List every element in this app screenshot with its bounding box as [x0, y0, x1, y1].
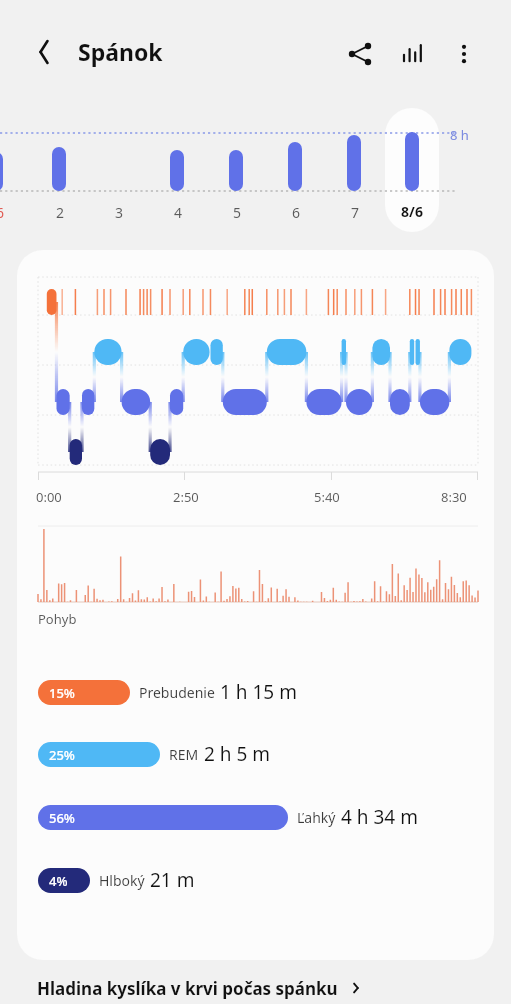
button[interactable]: Statistics [392, 34, 432, 74]
staticText: 56% [49, 809, 75, 827]
button[interactable]: Hladina kyslíka v krvi počas spánku [17, 972, 494, 1004]
button[interactable]: Share [340, 34, 380, 74]
staticText: Ľahký [297, 808, 336, 827]
staticText: 5:40 [314, 488, 340, 506]
staticText: 25% [49, 746, 75, 764]
staticText: 21 m [150, 867, 195, 893]
staticText: 8/6 [394, 202, 430, 221]
staticText: REM [169, 745, 199, 764]
staticText: Pohyb [38, 610, 77, 628]
staticText: 5 [229, 203, 245, 222]
staticText: 15% [49, 684, 75, 702]
staticText: 2:50 [173, 488, 199, 506]
staticText: 6 [0, 203, 8, 222]
staticText: 4 [170, 203, 186, 222]
staticText: Hladina kyslíka v krvi počas spánku [37, 977, 338, 1000]
staticText: 0:00 [36, 488, 62, 506]
staticText: 3 [111, 203, 127, 222]
button[interactable]: 25% [38, 737, 271, 771]
button[interactable]: 15% [38, 675, 297, 709]
staticText: Spánok [78, 36, 163, 67]
button[interactable] [385, 108, 439, 232]
staticText: 8 h [450, 126, 469, 144]
staticText: Prebudenie [139, 683, 215, 702]
staticText: 4% [49, 872, 68, 890]
button[interactable]: Back [26, 34, 62, 70]
staticText: 2 h 5 m [204, 741, 271, 767]
staticText: 6 [288, 203, 304, 222]
staticText: 2 [52, 203, 68, 222]
staticText: 1 h 15 m [220, 679, 297, 705]
staticText: 7 [347, 203, 363, 222]
staticText: 8:30 [441, 488, 467, 506]
staticText: Hlboký [99, 871, 145, 890]
button[interactable]: More options [444, 34, 484, 74]
staticText: 4 h 34 m [341, 804, 418, 830]
button[interactable]: 56% [38, 800, 418, 834]
button[interactable]: 4% [38, 863, 195, 897]
